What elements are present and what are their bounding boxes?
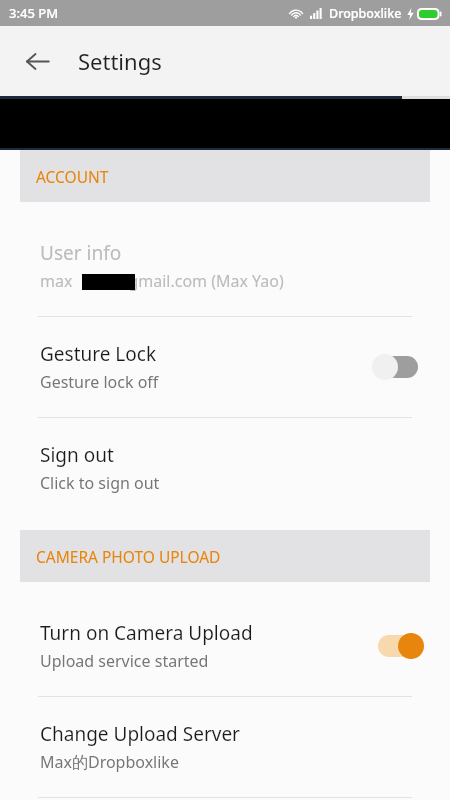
button[interactable]: Gesture Lock xyxy=(0,317,450,417)
staticText: Click to sign out xyxy=(40,472,160,494)
staticText: Settings xyxy=(78,46,162,76)
button[interactable]: Gesture Lock toggle, off xyxy=(372,352,424,382)
button[interactable]: Back xyxy=(12,36,62,86)
staticText: User info xyxy=(40,240,122,266)
staticText: Gesture Lock xyxy=(40,341,157,367)
staticText: Gesture lock off xyxy=(40,371,159,393)
button[interactable]: Camera upload toggle, on xyxy=(372,631,424,661)
staticText: Change Upload Server xyxy=(40,721,240,747)
button[interactable]: Change Upload Server xyxy=(0,697,450,797)
staticText: Max的Dropboxlike xyxy=(40,751,179,773)
staticText: Turn on Camera Upload xyxy=(40,620,253,646)
staticText: CAMERA PHOTO UPLOAD xyxy=(36,546,221,567)
staticText: Dropboxlike xyxy=(329,5,402,22)
staticText: Sign out xyxy=(40,442,114,468)
button[interactable]: Sign out xyxy=(0,418,450,518)
staticText: ACCOUNT xyxy=(36,166,109,187)
staticText: Upload service started xyxy=(40,650,209,672)
button[interactable]: User info xyxy=(0,216,450,316)
staticText: 3:45 PM xyxy=(9,4,59,22)
button[interactable]: Turn on Camera Upload xyxy=(0,596,450,696)
staticText: max @gmail.com (Max Yao) xyxy=(40,270,284,292)
